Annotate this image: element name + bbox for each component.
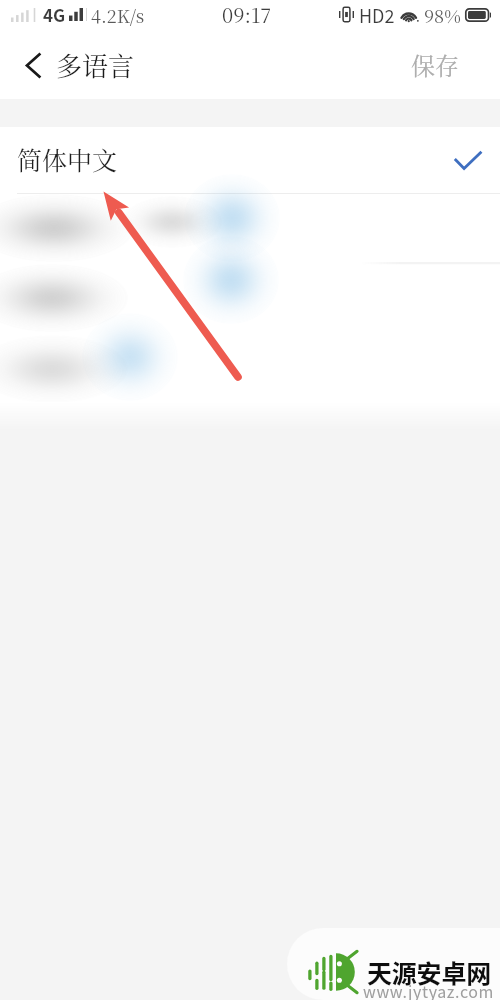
staticText: 保存 — [411, 47, 459, 81]
staticText: 简体中文 — [17, 141, 118, 177]
staticText: 4G — [43, 2, 66, 27]
button[interactable]: 简体中文 — [0, 127, 500, 193]
button[interactable]: 保存 — [405, 39, 465, 89]
staticText: 4.2K/s — [91, 2, 145, 28]
staticText: HD2 — [359, 2, 395, 28]
staticText: 天源安卓网 — [367, 954, 492, 990]
staticText: www.jytyaz.com — [363, 979, 494, 1000]
staticText: 多语言 — [56, 46, 135, 83]
button[interactable]: Back — [17, 48, 51, 82]
staticText: 09:17 — [222, 0, 272, 29]
staticText: 98% — [424, 2, 461, 28]
